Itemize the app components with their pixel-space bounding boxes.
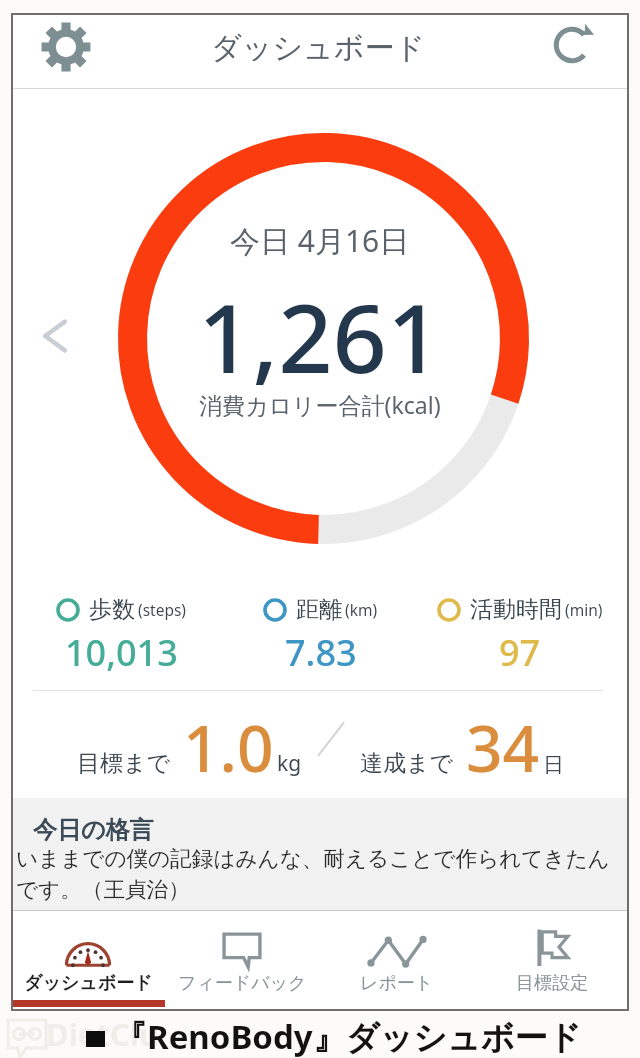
staticText: 97 [499,628,541,677]
staticText: 目標まで [77,749,171,778]
button[interactable]: レポート [319,910,474,1007]
button[interactable]: Refresh [550,23,594,67]
staticText: ダッシュボード [211,29,426,67]
staticText: レポート [360,972,434,995]
staticText: 34 [466,704,540,791]
staticText: 活動時間 [470,595,562,624]
staticText: 歩数 [89,595,135,624]
staticText: 1.0 [183,704,274,791]
staticText: (steps) [138,599,187,620]
button[interactable]: フィードバック [165,910,319,1007]
button[interactable]: 距離 [221,595,420,677]
button[interactable]: Settings [40,21,92,73]
button[interactable]: 活動時間 [420,595,619,677]
staticText: 今日の格言 [33,815,154,845]
staticText: (min) [565,599,603,620]
staticText: 達成まで [360,749,454,778]
staticText: DietClub [46,1013,166,1047]
staticText: 消費カロリー合計(kcal) [199,389,441,420]
button[interactable]: ダッシュボード [11,910,165,1007]
staticText: フィードバック [178,972,307,995]
staticText: kg [277,749,302,778]
staticText: 10,013 [65,628,178,677]
staticText: ダッシュボード [24,972,153,995]
staticText: 『RenoBody』ダッシュボード [114,1014,582,1058]
staticText: 7.83 [285,628,357,677]
staticText: 日 [543,752,564,778]
staticText: 今日 4月16日 [230,220,410,261]
staticText: 目標設定 [516,972,588,995]
button[interactable]: Previous day [36,317,74,355]
staticText: 1,261 [198,271,442,400]
button[interactable]: 目標設定 [474,910,629,1007]
staticText: (km) [345,599,378,620]
staticText: 距離 [296,595,342,624]
staticText: いままでの僕の記録はみんな、耐えることで作られてきたんです。（王貞治） [16,845,622,904]
button[interactable]: 歩数 [21,595,221,677]
